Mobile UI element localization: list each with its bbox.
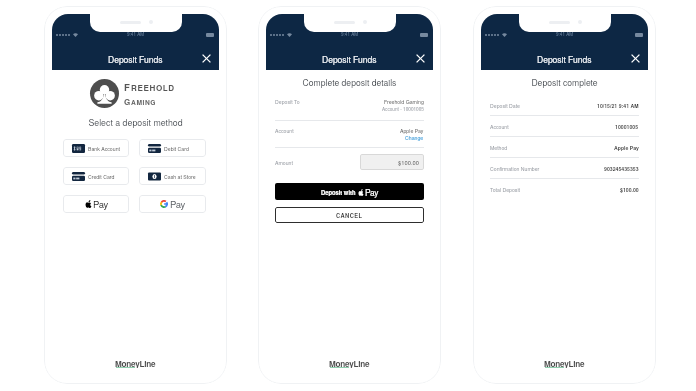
staticText: Pay [93, 197, 108, 211]
staticText: Pay [365, 186, 379, 198]
button[interactable]: Apple Pay [63, 195, 129, 213]
button[interactable]: Deposit with [275, 183, 424, 200]
staticText: G [124, 96, 131, 107]
button[interactable]: Change [405, 134, 424, 141]
staticText: Apple Pay [400, 127, 424, 134]
staticText: Bank Account [88, 145, 120, 152]
staticText: Credit Card [88, 173, 115, 180]
staticText: Debit Card [164, 145, 189, 152]
staticText: 9:41 AM [341, 31, 359, 38]
staticText: Deposit Funds [322, 53, 377, 65]
button[interactable]: Cash at Store [139, 167, 206, 185]
staticText: Deposit Date [490, 102, 520, 109]
button[interactable]: Close [414, 52, 427, 65]
staticText: MoneyLine [544, 358, 585, 368]
staticText: Select a deposit method [52, 116, 219, 129]
button[interactable]: Google Pay [139, 195, 206, 213]
button[interactable]: Close [200, 52, 213, 65]
staticText: AMING [131, 97, 157, 107]
staticText: Deposit Funds [108, 53, 163, 65]
staticText: Cash at Store [164, 173, 196, 180]
staticText: CANCEL [336, 211, 363, 219]
staticText: Account - 10001005 [382, 106, 424, 113]
staticText: 10/15/21 9:41 AM [597, 102, 639, 109]
button[interactable]: $100.00 [360, 154, 424, 170]
button[interactable]: Credit Card [63, 167, 129, 185]
staticText: REEHOLD [131, 82, 175, 94]
staticText: $100.00 [398, 158, 419, 166]
staticText: 9:41 AM [556, 31, 574, 38]
staticText: Complete deposit details [266, 76, 433, 88]
staticText: $100.00 [620, 186, 639, 193]
staticText: 10001005 [615, 123, 639, 130]
staticText: Deposit Funds [537, 53, 592, 65]
staticText: Confirmation Number [490, 165, 540, 172]
staticText: Account [275, 127, 294, 134]
staticText: Total Deposit [490, 186, 521, 193]
staticText: Account [490, 123, 509, 130]
button[interactable]: Debit Card [139, 139, 206, 157]
staticText: MoneyLine [115, 358, 156, 368]
staticText: Deposit To [275, 98, 300, 105]
button[interactable]: Bank Account [63, 139, 129, 157]
button[interactable]: Close [629, 52, 642, 65]
staticText: Pay [170, 197, 185, 211]
staticText: 903245435353 [604, 165, 639, 172]
staticText: Freehold Gaming [384, 98, 424, 105]
staticText: Amount [275, 159, 293, 166]
staticText: Apple Pay [614, 144, 639, 151]
staticText: F [124, 80, 131, 94]
staticText: MoneyLine [329, 358, 370, 368]
staticText: Deposit complete [481, 76, 648, 88]
button[interactable]: CANCEL [275, 207, 424, 223]
staticText: Deposit with [321, 188, 356, 196]
staticText: 9:41 AM [127, 31, 145, 38]
staticText: Method [490, 144, 508, 151]
